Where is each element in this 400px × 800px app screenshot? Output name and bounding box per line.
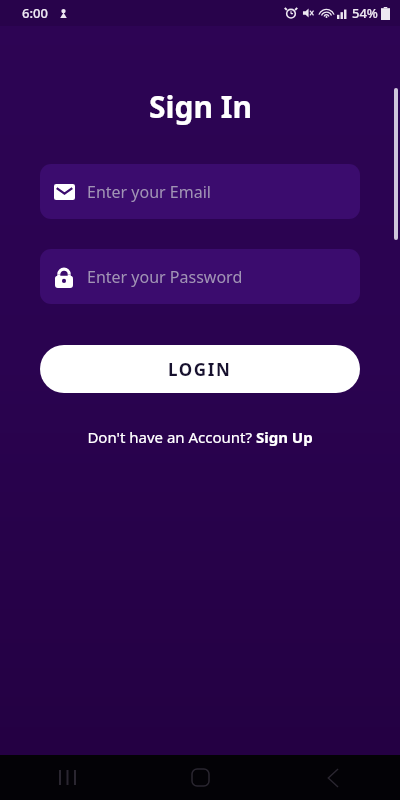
staticText: Don't have an Account? Sign Up xyxy=(87,427,313,447)
button[interactable]: Don't have an Account? Sign Up xyxy=(83,425,317,449)
button[interactable]: Recents xyxy=(0,755,134,800)
button[interactable]: Password xyxy=(40,249,360,304)
staticText: 6:00 xyxy=(22,4,48,22)
button[interactable]: Home xyxy=(134,755,267,800)
staticText: Sign In xyxy=(149,86,252,127)
button[interactable]: Email xyxy=(40,164,360,219)
staticText: 54% xyxy=(352,4,378,22)
staticText: Enter your Email xyxy=(87,181,211,203)
staticText: Enter your Password xyxy=(87,266,243,288)
other: Password xyxy=(55,267,73,288)
button[interactable]: LOGIN xyxy=(40,345,360,393)
other: Email xyxy=(54,184,75,200)
staticText: LOGIN xyxy=(168,358,232,381)
